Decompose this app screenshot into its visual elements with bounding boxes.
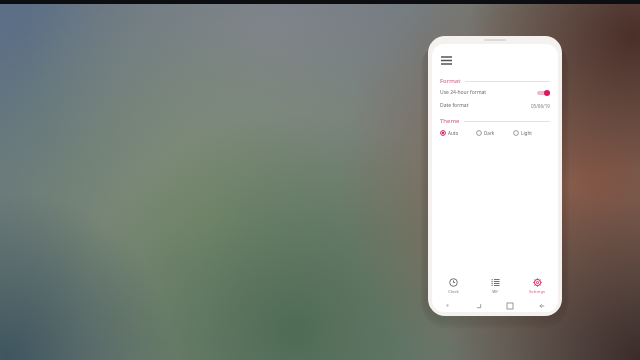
staticText: Light — [521, 130, 532, 136]
button[interactable]: Use 24-hour format — [432, 86, 558, 99]
button[interactable]: Use 24-hour format toggle — [537, 90, 550, 96]
staticText: 05/06/19 — [531, 103, 550, 109]
button[interactable]: Auto — [440, 129, 476, 137]
button[interactable]: Home — [494, 303, 526, 309]
staticText: Use 24-hour format — [440, 89, 487, 96]
button[interactable]: Light — [513, 129, 550, 137]
button[interactable]: Settings — [516, 273, 558, 299]
staticText: Clock — [448, 289, 459, 295]
staticText: Date format — [440, 102, 469, 109]
button[interactable]: Open navigation menu — [438, 52, 454, 68]
button[interactable]: Back — [526, 303, 558, 309]
button[interactable]: Date format — [432, 99, 558, 112]
button[interactable]: Dark — [476, 129, 513, 137]
staticText: Settings — [529, 289, 545, 295]
button[interactable]: Wf — [474, 273, 516, 299]
staticText: Auto — [448, 130, 459, 136]
button[interactable]: Recents — [463, 303, 494, 309]
staticText: Format — [440, 77, 461, 85]
staticText: Dark — [484, 130, 495, 136]
staticText: Theme — [440, 117, 460, 125]
staticText: Wf — [492, 289, 498, 295]
button[interactable]: Clock — [432, 273, 474, 299]
